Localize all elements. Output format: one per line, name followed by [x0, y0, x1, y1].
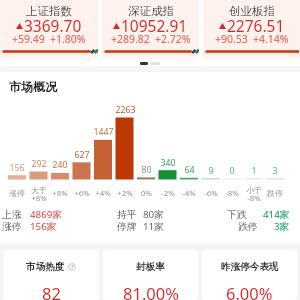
staticText: 340	[160, 157, 176, 169]
staticText: +59.49	[12, 32, 45, 46]
staticText: ?	[71, 263, 74, 271]
button[interactable]: 持平	[117, 208, 165, 221]
button[interactable]: 深证成指	[102, 0, 199, 60]
staticText: 1	[251, 165, 257, 177]
staticText: 大于 +8%	[31, 185, 47, 201]
button[interactable]: 上证指数	[0, 0, 98, 60]
staticText: 156家	[30, 220, 57, 233]
staticText: 1447	[93, 126, 114, 138]
staticText: 跌停	[267, 188, 283, 198]
staticText: -2%	[161, 188, 175, 199]
staticText: 240	[52, 159, 68, 171]
staticText: 下跌	[227, 209, 247, 221]
staticText: 创业板指	[229, 4, 275, 18]
staticText: 跌停	[238, 221, 258, 233]
button[interactable]: 上涨	[2, 208, 63, 221]
staticText: 11家	[143, 220, 165, 233]
other: 说明	[68, 263, 76, 271]
staticText: 292	[31, 158, 47, 170]
button[interactable]: 创业板指	[203, 0, 300, 60]
staticText: 6.00%	[226, 282, 273, 300]
staticText: 3家	[274, 220, 290, 233]
staticText: 昨涨停今表现	[221, 261, 279, 273]
staticText: -8%	[225, 188, 239, 199]
staticText: 涨停	[2, 221, 22, 233]
staticText: 82	[42, 282, 61, 300]
staticText: 10952.91	[121, 15, 188, 36]
staticText: 深证成指	[128, 4, 174, 18]
staticText: -6%	[204, 188, 218, 199]
staticText: +6%	[74, 188, 90, 199]
staticText: 上证指数	[26, 4, 72, 18]
staticText: 小于 -8%	[246, 185, 262, 201]
staticText: 涨停	[9, 188, 25, 198]
staticText: +8%	[52, 188, 68, 199]
staticText: 81.00%	[123, 282, 179, 300]
staticText: 上涨	[2, 209, 22, 221]
staticText: 64	[184, 164, 195, 176]
staticText: +1.80%	[50, 32, 86, 46]
staticText: 停牌	[117, 221, 137, 233]
button[interactable]: 下跌	[227, 208, 290, 221]
button[interactable]: 昨涨停今表现	[202, 250, 297, 300]
staticText: 2263	[115, 104, 136, 116]
staticText: +289.82	[111, 32, 150, 46]
staticText: 9	[208, 165, 214, 177]
button[interactable]: 跌停	[238, 220, 290, 233]
staticText: 持平	[117, 209, 137, 221]
staticText: 4869家	[30, 208, 63, 221]
button[interactable]: 封板率	[103, 250, 198, 300]
staticText: 市场热度	[26, 261, 65, 273]
staticText: +2.72%	[155, 32, 191, 46]
staticText: 2276.51	[227, 15, 285, 36]
staticText: 156	[9, 162, 25, 174]
staticText: 市场概况	[9, 79, 57, 94]
staticText: +4%	[95, 188, 111, 199]
staticText: 627	[74, 149, 90, 161]
staticText: +2%	[117, 188, 133, 199]
staticText: 0	[229, 165, 235, 177]
staticText: +4.14%	[253, 32, 289, 46]
staticText: 3369.70	[24, 15, 82, 36]
staticText: 封板率	[136, 261, 165, 273]
button[interactable]: 市场热度	[3, 250, 99, 300]
staticText: 0%	[141, 188, 152, 199]
staticText: 3	[272, 165, 278, 177]
staticText: +90.53	[215, 32, 248, 46]
staticText: 80家	[143, 208, 165, 221]
staticText: -4%	[182, 188, 196, 199]
button[interactable]: 涨停	[2, 220, 57, 233]
button[interactable]: 停牌	[117, 220, 165, 233]
staticText: 414家	[263, 208, 290, 221]
staticText: 80	[141, 164, 152, 176]
